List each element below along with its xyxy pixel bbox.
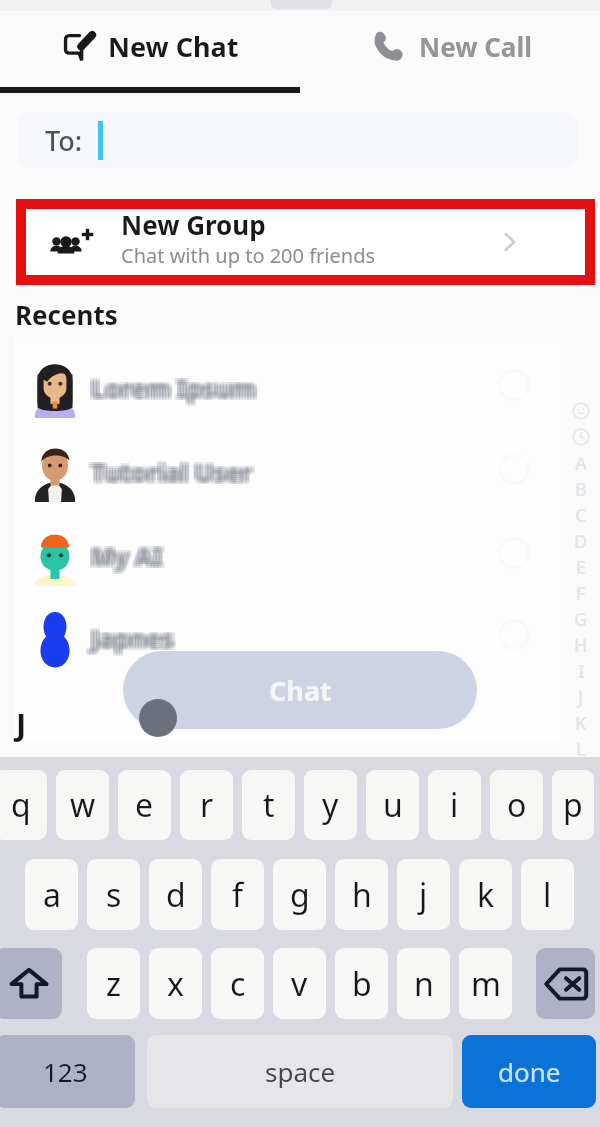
staticText: Chat bbox=[269, 672, 332, 709]
staticText: J bbox=[578, 685, 584, 710]
button[interactable]: o bbox=[490, 770, 543, 840]
staticText: s bbox=[106, 873, 122, 917]
button[interactable]: f bbox=[211, 859, 264, 930]
staticText: New Call bbox=[419, 29, 532, 64]
button[interactable]: y bbox=[304, 770, 357, 840]
button[interactable]: Alphabet index bbox=[566, 398, 596, 762]
staticText: q bbox=[11, 783, 31, 827]
button[interactable]: My AI bbox=[0, 513, 600, 597]
staticText: w bbox=[70, 783, 96, 827]
button[interactable]: d bbox=[149, 859, 202, 930]
staticText: u bbox=[383, 783, 403, 827]
staticText: n bbox=[414, 962, 434, 1006]
button[interactable]: a bbox=[25, 859, 78, 930]
button[interactable]: c bbox=[211, 948, 264, 1019]
staticText: K bbox=[575, 711, 587, 736]
button[interactable]: p bbox=[552, 770, 594, 840]
button[interactable]: space bbox=[147, 1035, 453, 1108]
staticText: y bbox=[322, 783, 339, 827]
staticText: My AI bbox=[88, 541, 160, 575]
button[interactable]: j bbox=[397, 859, 450, 930]
button[interactable]: 123 bbox=[0, 1035, 135, 1108]
staticText: I bbox=[578, 659, 585, 684]
staticText: x bbox=[167, 962, 184, 1006]
button[interactable]: done bbox=[462, 1035, 596, 1108]
staticText: o bbox=[507, 783, 527, 827]
staticText: Japnes bbox=[94, 623, 177, 657]
staticText: My AI bbox=[94, 537, 166, 571]
staticText: L bbox=[576, 737, 586, 762]
button[interactable]: u bbox=[366, 770, 419, 840]
button[interactable]: w bbox=[56, 770, 109, 840]
staticText: Tutorial User bbox=[88, 455, 250, 489]
staticText: Japnes bbox=[88, 619, 171, 653]
staticText: Japnes bbox=[91, 623, 174, 657]
staticText: space bbox=[265, 1054, 336, 1089]
button[interactable]: m bbox=[459, 948, 512, 1019]
staticText: A bbox=[575, 451, 587, 476]
staticText: 123 bbox=[43, 1054, 88, 1089]
button[interactable]: Lorem Ipsum bbox=[0, 345, 600, 429]
button[interactable]: e bbox=[118, 770, 171, 840]
button[interactable]: New Chat bbox=[0, 0, 300, 92]
staticText: G bbox=[574, 607, 588, 632]
staticText: Lorem Ipsum bbox=[88, 369, 253, 403]
staticText: My AI bbox=[88, 539, 160, 573]
button[interactable]: q bbox=[0, 770, 47, 840]
staticText: Tutorial User bbox=[91, 457, 253, 491]
staticText: New Group bbox=[121, 207, 266, 242]
staticText: d bbox=[166, 873, 186, 917]
button[interactable]: Shift bbox=[0, 948, 62, 1019]
staticText: My AI bbox=[91, 539, 163, 573]
button[interactable]: h bbox=[335, 859, 388, 930]
staticText: f bbox=[232, 873, 244, 917]
staticText: E bbox=[576, 555, 587, 580]
staticText: e bbox=[135, 783, 154, 827]
button[interactable]: i bbox=[428, 770, 481, 840]
staticText: Japnes bbox=[91, 619, 174, 653]
staticText: Lorem Ipsum bbox=[88, 373, 253, 407]
staticText: c bbox=[230, 962, 246, 1006]
button[interactable]: v bbox=[273, 948, 326, 1019]
button[interactable]: t bbox=[242, 770, 295, 840]
button[interactable]: Japnes bbox=[0, 595, 600, 679]
button[interactable]: Tutorial User bbox=[0, 429, 600, 513]
button[interactable]: Backspace bbox=[536, 948, 595, 1019]
staticText: Lorem Ipsum bbox=[94, 371, 259, 405]
staticText: t bbox=[263, 783, 275, 827]
staticText: i bbox=[450, 783, 459, 827]
staticText: F bbox=[576, 581, 586, 606]
staticText: v bbox=[291, 962, 308, 1006]
button[interactable]: g bbox=[273, 859, 326, 930]
staticText: Japnes bbox=[88, 623, 171, 657]
staticText: B bbox=[575, 477, 587, 502]
button[interactable]: x bbox=[149, 948, 202, 1019]
button[interactable]: New Group bbox=[26, 209, 585, 275]
button[interactable]: r bbox=[180, 770, 233, 840]
staticText: Japnes bbox=[91, 621, 174, 655]
button[interactable]: l bbox=[521, 859, 574, 930]
staticText: Lorem Ipsum bbox=[91, 373, 256, 407]
button[interactable]: New Call bbox=[300, 0, 600, 92]
button[interactable]: Chat bbox=[123, 651, 477, 729]
button[interactable]: n bbox=[397, 948, 450, 1019]
staticText: z bbox=[106, 962, 122, 1006]
button[interactable]: k bbox=[459, 859, 512, 930]
staticText: My AI bbox=[88, 537, 160, 571]
staticText: b bbox=[352, 962, 372, 1006]
staticText: Japnes bbox=[94, 621, 177, 655]
button[interactable]: To: bbox=[18, 112, 578, 168]
button[interactable]: b bbox=[335, 948, 388, 1019]
staticText: Tutorial User bbox=[94, 457, 256, 491]
staticText: done bbox=[498, 1054, 561, 1089]
staticText: Lorem Ipsum bbox=[91, 371, 256, 405]
staticText: m bbox=[471, 962, 501, 1006]
button[interactable]: z bbox=[87, 948, 140, 1019]
staticText: a bbox=[43, 873, 61, 917]
staticText: Tutorial User bbox=[94, 453, 256, 487]
staticText: New Chat bbox=[108, 28, 239, 65]
button[interactable]: s bbox=[87, 859, 140, 930]
staticText: p bbox=[563, 783, 583, 827]
staticText: Chat with up to 200 friends bbox=[121, 242, 376, 269]
staticText: Lorem Ipsum bbox=[88, 371, 253, 405]
